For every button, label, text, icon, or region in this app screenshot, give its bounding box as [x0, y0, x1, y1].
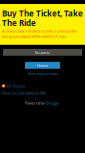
staticText: Blogger [46, 100, 60, 105]
staticText: No posts. [34, 50, 50, 55]
button[interactable]: Home [25, 62, 60, 69]
button[interactable]: View web version [25, 71, 59, 76]
staticText: View my complete profile [2, 90, 46, 95]
staticText: A Gonzo diary of divorce and cruising to… [2, 28, 77, 39]
staticText: Dr Denise [7, 83, 25, 88]
staticText: Buy The Ticket, Take The Ride [2, 8, 83, 28]
staticText: Powered by [25, 100, 45, 105]
staticText: Home [37, 63, 48, 68]
button[interactable]: Powered by [25, 101, 60, 105]
staticText: View web version [27, 71, 57, 76]
button[interactable]: Dr Denise [2, 84, 83, 88]
button[interactable]: View my complete profile [2, 91, 83, 95]
